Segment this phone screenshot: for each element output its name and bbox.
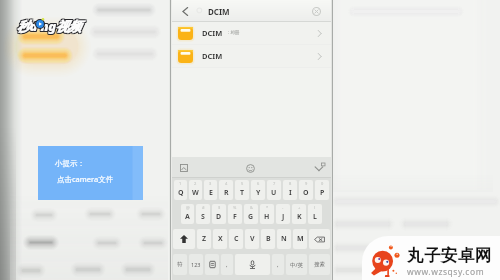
staticText: H: [264, 212, 270, 222]
button[interactable]: %: [228, 204, 242, 224]
staticText: S: [201, 212, 205, 222]
button[interactable]: 8: [283, 180, 297, 200]
button[interactable]: N: [277, 229, 291, 249]
staticText: 秒d ng视频: [17, 16, 81, 34]
staticText: K: [297, 212, 302, 222]
button[interactable]: 9: [299, 180, 313, 200]
staticText: 秒d ng视频: [17, 17, 81, 35]
staticText: I: [289, 188, 292, 198]
staticText: %: [233, 205, 237, 210]
button[interactable]: Shift: [173, 229, 195, 249]
button[interactable]: Hide keyboard: [312, 161, 326, 175]
staticText: 8: [289, 181, 292, 186]
staticText: P: [320, 188, 325, 198]
button[interactable]: 5: [235, 180, 249, 200]
staticText: R: [224, 188, 229, 198]
button[interactable]: X: [213, 229, 227, 249]
staticText: W: [192, 188, 199, 198]
staticText: 0: [321, 181, 324, 186]
staticText: 搜索: [314, 261, 325, 268]
button[interactable]: DCIM: [172, 45, 331, 67]
button[interactable]: *: [260, 204, 274, 224]
staticText: 小提示：: [55, 159, 85, 168]
staticText: F: [233, 212, 237, 222]
staticText: 丸子安卓网: [407, 245, 492, 266]
staticText: www.wzsqsy.com: [407, 266, 485, 278]
staticText: DCIM: [202, 51, 223, 61]
button[interactable]: 6: [251, 180, 265, 200]
staticText: O: [303, 188, 309, 198]
button[interactable]: B: [261, 229, 275, 249]
button[interactable]: &: [244, 204, 258, 224]
staticText: -: [282, 205, 284, 210]
staticText: 点击camera文件: [55, 174, 114, 184]
button[interactable]: 4: [219, 180, 233, 200]
button[interactable]: Voice input: [235, 254, 270, 275]
staticText: ：相册: [226, 30, 240, 36]
staticText: 5: [241, 181, 244, 186]
staticText: D: [216, 212, 222, 222]
button[interactable]: Keyboard theme: [179, 163, 189, 173]
staticText: &: [250, 205, 253, 210]
button[interactable]: -: [276, 204, 290, 224]
staticText: T: [240, 188, 245, 198]
staticText: +: [298, 205, 301, 210]
button[interactable]: @: [181, 204, 194, 224]
button[interactable]: 符: [173, 254, 187, 275]
button[interactable]: #: [196, 204, 210, 224]
staticText: 4: [225, 181, 228, 186]
button[interactable]: 2: [189, 180, 202, 200]
button[interactable]: M: [293, 229, 307, 249]
staticText: 2: [194, 181, 197, 186]
staticText: C: [234, 234, 239, 244]
button[interactable]: 123: [189, 254, 203, 275]
staticText: X: [218, 234, 223, 244]
button[interactable]: V: [245, 229, 259, 249]
button[interactable]: Handwriting: [205, 254, 219, 275]
staticText: 1: [179, 181, 182, 186]
button[interactable]: $: [212, 204, 226, 224]
staticText: U: [271, 188, 277, 198]
staticText: 秒d ng视频: [17, 18, 81, 36]
button[interactable]: 1: [174, 180, 187, 200]
staticText: M: [297, 234, 304, 244]
button[interactable]: DCIM: [172, 22, 331, 44]
staticText: A: [185, 212, 190, 222]
staticText: 7: [273, 181, 276, 186]
button[interactable]: Emoji: [244, 162, 256, 174]
staticText: DCIM: [202, 28, 223, 38]
staticText: G: [248, 212, 254, 222]
staticText: 123: [191, 261, 201, 268]
staticText: Z: [202, 234, 207, 244]
staticText: V: [250, 234, 255, 244]
staticText: E: [209, 188, 213, 198]
button[interactable]: ,: [272, 254, 284, 275]
staticText: 3: [209, 181, 212, 186]
staticText: N: [281, 234, 287, 244]
staticText: 秒d ng视频: [16, 17, 80, 35]
button[interactable]: 0: [315, 180, 329, 200]
button[interactable]: Backspace: [309, 229, 330, 249]
button[interactable]: 搜索: [309, 254, 330, 275]
staticText: 秒d ng视频: [16, 16, 80, 34]
button[interactable]: 7: [267, 180, 281, 200]
staticText: $: [218, 205, 221, 210]
staticText: 6: [257, 181, 260, 186]
button[interactable]: Clear text: [309, 4, 323, 18]
button[interactable]: (: [308, 204, 322, 224]
staticText: #: [202, 205, 205, 210]
button[interactable]: +: [292, 204, 306, 224]
staticText: 秒d ng视频: [18, 18, 82, 36]
button[interactable]: Back: [178, 4, 192, 18]
button[interactable]: C: [229, 229, 243, 249]
button[interactable]: 3: [204, 180, 217, 200]
staticText: Q: [178, 188, 184, 198]
button[interactable]: 中/英: [286, 254, 307, 275]
staticText: B: [266, 234, 271, 244]
staticText: ,: [277, 261, 279, 269]
button[interactable]: Z: [197, 229, 211, 249]
staticText: (: [314, 205, 316, 210]
staticText: Y: [256, 188, 261, 198]
staticText: ,: [226, 261, 228, 269]
button[interactable]: ,: [221, 254, 233, 275]
